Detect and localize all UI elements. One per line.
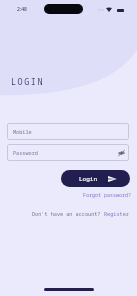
other: Submit xyxy=(108,176,117,182)
button[interactable]: Mobile xyxy=(7,123,129,140)
staticText: Password xyxy=(13,149,38,156)
staticText: Forgot password? xyxy=(83,192,132,199)
staticText: Don't have an account? xyxy=(32,210,104,217)
other: Toggle password visibility xyxy=(118,150,125,156)
button[interactable]: Login xyxy=(61,170,130,187)
staticText: 2:48 xyxy=(17,6,27,13)
staticText: LOGIN xyxy=(11,76,45,88)
button[interactable]: Register xyxy=(104,210,129,217)
staticText: Login xyxy=(79,175,98,183)
staticText: Mobile xyxy=(13,128,32,135)
button[interactable]: Forgot password? xyxy=(83,192,132,199)
button[interactable]: Password xyxy=(7,144,129,161)
